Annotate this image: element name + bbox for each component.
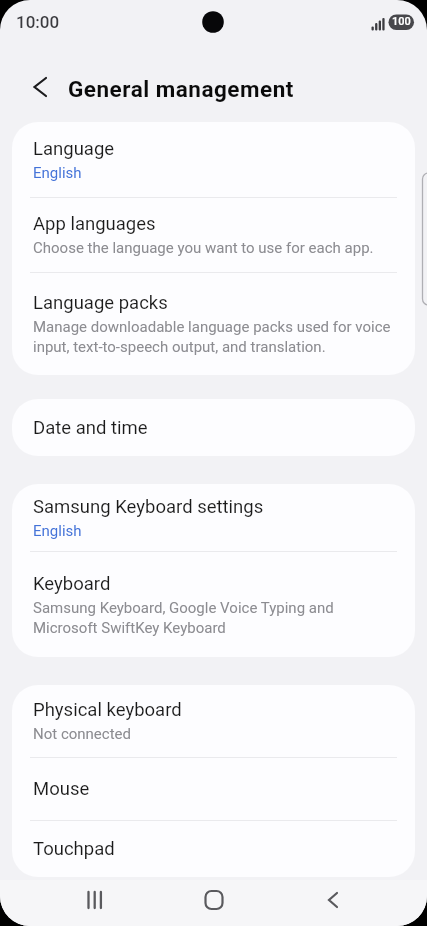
button[interactable] <box>78 882 114 918</box>
staticText: App languages <box>33 213 156 235</box>
staticText: General management <box>68 76 294 102</box>
staticText: English <box>33 164 82 182</box>
staticText: Keyboard <box>33 573 111 595</box>
button[interactable] <box>315 882 351 918</box>
staticText: Not connected <box>33 725 131 743</box>
staticText: Samsung Keyboard settings <box>33 496 264 518</box>
button[interactable]: Keyboard <box>12 552 415 657</box>
staticText: Date and time <box>33 417 148 439</box>
staticText: Physical keyboard <box>33 699 182 721</box>
staticText: Language packs <box>33 292 168 314</box>
staticText: 100 <box>392 15 411 28</box>
button[interactable]: Mouse <box>12 758 415 820</box>
button[interactable]: Language packs <box>12 273 415 375</box>
button[interactable]: Date and time <box>12 399 415 456</box>
staticText: Manage downloadable language packs used … <box>33 318 391 356</box>
button[interactable]: Touchpad <box>12 821 415 877</box>
staticText: Choose the language you want to use for … <box>33 239 374 257</box>
staticText: 10:00 <box>16 12 60 32</box>
staticText: Touchpad <box>33 838 115 860</box>
button[interactable]: App languages <box>12 198 415 272</box>
staticText: Language <box>33 138 115 160</box>
button[interactable] <box>22 69 58 105</box>
button[interactable] <box>196 882 232 918</box>
staticText: English <box>33 522 82 540</box>
staticText: Mouse <box>33 778 90 800</box>
button[interactable]: Language <box>12 122 415 197</box>
staticText: Samsung Keyboard, Google Voice Typing an… <box>33 599 334 637</box>
button[interactable]: Physical keyboard <box>12 685 415 757</box>
button[interactable]: Samsung Keyboard settings <box>12 484 415 551</box>
